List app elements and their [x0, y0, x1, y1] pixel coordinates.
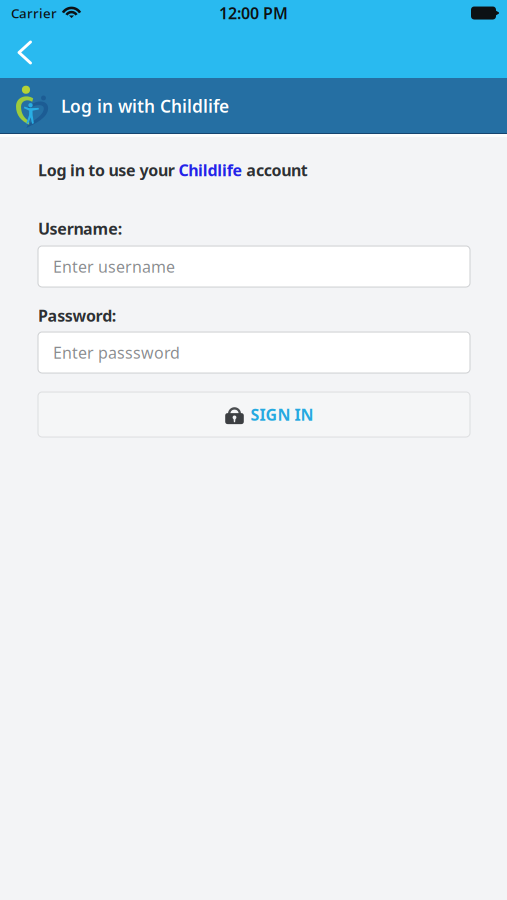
staticText: Childlife [178, 159, 242, 181]
staticText: Log in with Childlife [61, 94, 229, 117]
staticText: SIGN IN [250, 404, 313, 425]
button[interactable]: Enter username [38, 246, 470, 287]
staticText: 12:00 PM [219, 2, 288, 24]
staticText: Password: [38, 305, 116, 326]
staticText: Enter passsword [53, 342, 180, 363]
staticText: Enter username [53, 256, 175, 277]
staticText: Carrier [11, 4, 57, 22]
staticText: Username: [38, 218, 122, 239]
button[interactable]: Back [0, 26, 48, 74]
button[interactable]: SIGN IN [38, 392, 470, 437]
staticText: account [242, 159, 308, 181]
button[interactable]: Enter passsword [38, 332, 470, 373]
staticText: Log in to use your [38, 159, 178, 181]
